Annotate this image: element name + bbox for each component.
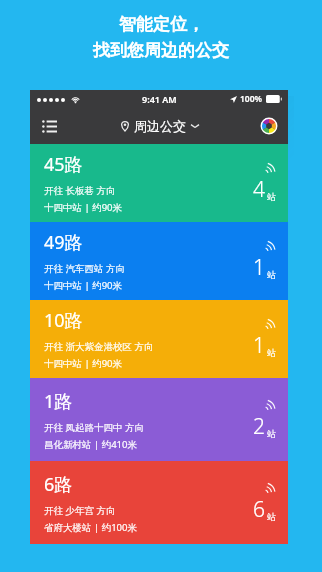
staticText: 站	[267, 428, 276, 439]
staticText: 2	[253, 412, 265, 441]
button[interactable]: 49路	[30, 222, 288, 300]
staticText: 十四中站 | 约90米	[44, 201, 123, 214]
staticText: 1	[253, 253, 265, 282]
staticText: 45路	[44, 152, 83, 177]
staticText: 十四中站 | 约90米	[44, 279, 123, 292]
staticText: 10路	[44, 308, 83, 333]
staticText: 9:41 AM	[142, 93, 177, 105]
staticText: 省府大楼站 | 约100米	[44, 521, 137, 534]
button[interactable]: 6路	[30, 461, 288, 544]
button[interactable]: Menu	[36, 113, 62, 139]
staticText: 1	[253, 331, 265, 360]
button[interactable]: 周边公交	[120, 118, 199, 134]
staticText: 1路	[44, 389, 73, 414]
staticText: 4	[253, 175, 265, 204]
staticText: 周边公交	[134, 118, 186, 134]
staticText: 6路	[44, 472, 73, 497]
staticText: 找到您周边的公交	[93, 40, 229, 61]
staticText: 昌化新村站 | 约410米	[44, 438, 137, 451]
button[interactable]: Profile	[257, 114, 281, 138]
button[interactable]: 10路	[30, 300, 288, 378]
button[interactable]: 45路	[30, 144, 288, 222]
staticText: 站	[267, 511, 276, 522]
staticText: 开往 汽车西站 方向	[44, 262, 125, 275]
staticText: 站	[267, 191, 276, 202]
button[interactable]: 1路	[30, 378, 288, 461]
staticText: 开往 浙大紫金港校区 方向	[44, 340, 154, 353]
staticText: 49路	[44, 230, 83, 255]
staticText: 开往 少年宫 方向	[44, 504, 116, 517]
staticText: 100%	[240, 93, 263, 105]
staticText: 站	[267, 269, 276, 280]
staticText: 站	[267, 347, 276, 358]
staticText: 6	[253, 495, 265, 524]
staticText: 智能定位，	[119, 14, 204, 35]
staticText: 开往 凤起路十四中 方向	[44, 421, 144, 434]
staticText: 十四中站 | 约90米	[44, 357, 123, 370]
staticText: 开往 长板巷 方向	[44, 184, 116, 197]
